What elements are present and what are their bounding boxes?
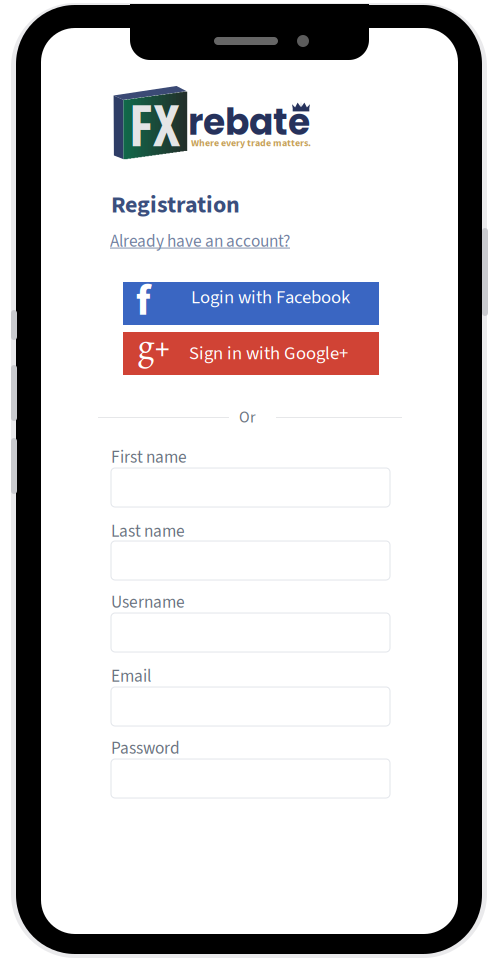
staticText: Email [111, 664, 151, 689]
button[interactable]: f [123, 282, 379, 325]
staticText: Last name [111, 519, 185, 544]
staticText: Password [111, 736, 180, 761]
staticText: Already have an account? [110, 229, 290, 254]
staticText: Sign in with Google+ [189, 340, 348, 367]
staticText: FX [129, 85, 180, 163]
staticText: Login with Facebook [191, 284, 350, 311]
staticText: Username [111, 590, 185, 615]
button[interactable]: Already have an account? [110, 229, 290, 254]
staticText: First name [111, 445, 187, 470]
staticText: Or [239, 406, 256, 429]
staticText: g [138, 320, 154, 369]
button[interactable]: g [123, 332, 379, 375]
staticText: + [155, 329, 170, 371]
staticText: rebate [188, 97, 310, 147]
staticText: Registration [111, 188, 240, 222]
staticText: f [136, 271, 151, 332]
staticText: Where every trade matters. [191, 136, 311, 150]
